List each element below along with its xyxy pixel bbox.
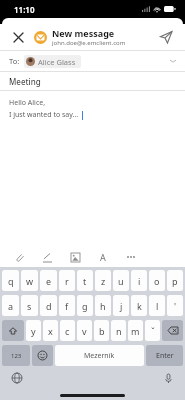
button[interactable]: m <box>128 320 143 341</box>
button[interactable]: ' <box>167 295 183 316</box>
staticText: A <box>100 251 106 263</box>
button[interactable]: More options <box>124 250 138 264</box>
staticText: d <box>46 300 52 312</box>
button[interactable]: u <box>113 270 129 291</box>
button[interactable]: i <box>131 270 147 291</box>
button[interactable]: t <box>77 270 93 291</box>
button[interactable]: a <box>2 295 19 316</box>
staticText: New message <box>52 27 115 39</box>
staticText: l <box>156 300 159 312</box>
staticText: Hello Alice, <box>9 98 46 108</box>
button[interactable]: k <box>131 295 147 316</box>
staticText: c <box>65 325 70 337</box>
staticText: Enter <box>156 351 174 361</box>
button[interactable]: c <box>60 320 75 341</box>
staticText: p <box>172 275 178 287</box>
staticText: u <box>118 275 124 287</box>
staticText: t <box>83 275 87 287</box>
button[interactable]: r <box>59 270 75 291</box>
button[interactable]: n <box>111 320 126 341</box>
button[interactable]: Enter <box>146 345 183 366</box>
button[interactable]: q <box>2 270 19 291</box>
staticText: To: <box>9 56 20 66</box>
button[interactable]: l <box>149 295 165 316</box>
staticText: x <box>48 325 53 337</box>
button[interactable]: e <box>40 270 57 291</box>
staticText: z <box>101 275 106 287</box>
button[interactable]: g <box>77 295 93 316</box>
button[interactable]: w <box>21 270 38 291</box>
staticText: b <box>99 325 105 337</box>
button[interactable]: Attach <box>12 250 26 264</box>
button[interactable]: 123 <box>2 345 30 366</box>
button[interactable]: o <box>149 270 165 291</box>
staticText: f <box>65 300 69 312</box>
staticText: k <box>137 300 142 312</box>
staticText: m <box>131 325 140 337</box>
button[interactable]: j <box>113 295 129 316</box>
button[interactable]: v <box>77 320 92 341</box>
button[interactable]: Signature <box>40 250 54 264</box>
staticText: a <box>8 300 14 312</box>
staticText: n <box>116 325 122 337</box>
button[interactable]: Send <box>156 27 176 47</box>
button[interactable]: Hello Alice, <box>9 98 185 247</box>
button[interactable]: A <box>96 250 110 264</box>
staticText: q <box>8 275 14 287</box>
staticText: h <box>100 300 106 312</box>
staticText: o <box>154 275 160 287</box>
button[interactable]: To: <box>9 51 176 71</box>
staticText: 123 <box>11 352 22 360</box>
button[interactable]: y <box>26 320 41 341</box>
staticText: j <box>120 300 123 312</box>
button[interactable]: p <box>167 270 183 291</box>
staticText: w <box>26 275 34 287</box>
staticText: ' <box>174 300 177 312</box>
button[interactable]: d <box>40 295 57 316</box>
button[interactable]: Backspace <box>162 320 183 341</box>
staticText: Meeting <box>9 76 41 87</box>
button[interactable]: f <box>59 295 75 316</box>
staticText: ˇ <box>151 325 155 337</box>
staticText: v <box>82 325 87 337</box>
button[interactable]: ˇ <box>145 320 160 341</box>
staticText: g <box>82 300 88 312</box>
staticText: Alice Glass <box>38 57 76 67</box>
staticText: s <box>27 300 32 312</box>
staticText: r <box>65 275 69 287</box>
button[interactable]: s <box>21 295 38 316</box>
staticText: i <box>138 275 141 287</box>
button[interactable]: z <box>95 270 111 291</box>
button[interactable]: Meeting <box>0 72 185 90</box>
staticText: 11:10 <box>14 4 35 15</box>
button[interactable]: Close <box>9 28 27 46</box>
button[interactable]: Insert image <box>68 250 82 264</box>
button[interactable]: Shift <box>2 320 24 341</box>
staticText: john.doe@e.emclient.com <box>52 39 126 47</box>
button[interactable]: h <box>95 295 111 316</box>
staticText: e <box>46 275 52 287</box>
button[interactable]: Mezerník <box>55 345 144 366</box>
button[interactable]: b <box>94 320 109 341</box>
button[interactable]: Voice input <box>160 370 176 386</box>
staticText: y <box>31 325 36 337</box>
staticText: I just wanted to say... <box>9 110 79 120</box>
button[interactable]: x <box>43 320 58 341</box>
staticText: Mezerník <box>84 351 115 361</box>
button[interactable]: Change language <box>9 370 25 386</box>
button[interactable]: Emoji <box>32 345 53 366</box>
